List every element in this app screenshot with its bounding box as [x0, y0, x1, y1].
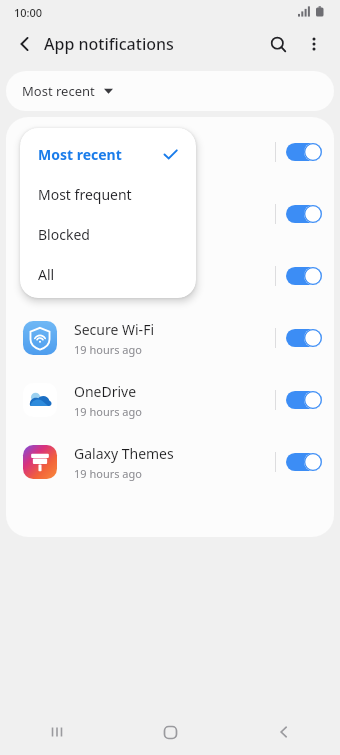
- staticText: Blocked: [38, 225, 90, 244]
- button[interactable]: Back: [8, 27, 42, 61]
- button[interactable]: Notification toggle: [6, 121, 334, 183]
- staticText: Most recent: [22, 82, 95, 100]
- button[interactable]: Most recent: [6, 71, 334, 111]
- staticText: Galaxy Themes: [74, 444, 174, 463]
- button[interactable]: OneDrive: [6, 369, 334, 431]
- button[interactable]: Blocked: [20, 214, 196, 254]
- button[interactable]: More options: [296, 26, 332, 62]
- button[interactable]: Notification toggle: [286, 451, 322, 473]
- button[interactable]: Most frequent: [20, 174, 196, 214]
- button[interactable]: Notification toggle: [286, 203, 322, 225]
- staticText: Most recent: [38, 145, 122, 164]
- button[interactable]: Notification toggle: [286, 265, 322, 287]
- button[interactable]: Search: [260, 26, 296, 62]
- staticText: 10:00: [14, 5, 43, 20]
- button[interactable]: Recents: [0, 709, 114, 755]
- staticText: 19 hours ago: [74, 342, 142, 357]
- staticText: All: [38, 265, 55, 284]
- staticText: Secure Wi-Fi: [74, 320, 155, 339]
- button[interactable]: 105 minutes ago: [6, 183, 334, 245]
- button[interactable]: Secure Wi-Fi: [6, 307, 334, 369]
- button[interactable]: Back: [227, 709, 340, 755]
- button[interactable]: Notification toggle: [286, 141, 322, 163]
- button[interactable]: Galaxy Store: [6, 245, 334, 307]
- button[interactable]: Notification toggle: [286, 389, 322, 411]
- staticText: Most frequent: [38, 185, 132, 204]
- button[interactable]: Most recent: [20, 134, 196, 174]
- button[interactable]: All: [20, 254, 196, 294]
- staticText: App notifications: [44, 33, 174, 55]
- button[interactable]: Home: [114, 709, 227, 755]
- staticText: 19 hours ago: [74, 466, 142, 481]
- staticText: OneDrive: [74, 382, 137, 401]
- staticText: 19 hours ago: [74, 404, 142, 419]
- button[interactable]: Notification toggle: [286, 327, 322, 349]
- button[interactable]: Galaxy Themes: [6, 431, 334, 493]
